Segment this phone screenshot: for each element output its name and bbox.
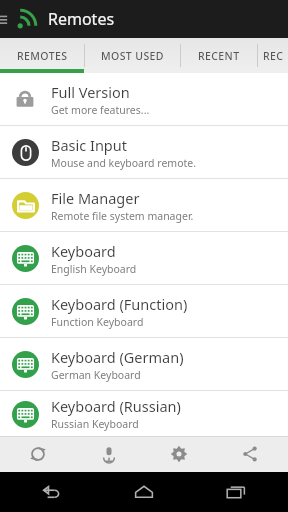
staticText: RECENT <box>198 49 240 63</box>
staticText: Mouse and keyboard remote. <box>51 156 197 170</box>
staticText: Basic Input <box>51 135 127 155</box>
button[interactable]: Keyboard (German) <box>0 338 288 391</box>
button[interactable]: Back <box>12 472 92 512</box>
staticText: Function Keyboard <box>51 315 144 329</box>
button[interactable]: REMOTES <box>0 38 84 73</box>
button[interactable]: Keyboard <box>0 232 288 285</box>
staticText: Remotes <box>48 8 115 30</box>
staticText: Get more features... <box>51 103 150 117</box>
button[interactable]: RECENT <box>181 38 257 73</box>
button[interactable]: Recents <box>196 472 276 512</box>
other: App icon <box>14 6 40 32</box>
staticText: English Keyboard <box>51 262 137 276</box>
button[interactable]: Share <box>217 436 283 472</box>
staticText: German Keyboard <box>51 368 141 382</box>
staticText: Keyboard (Function) <box>51 294 188 314</box>
button[interactable]: Keyboard (Function) <box>0 285 288 338</box>
staticText: REC <box>263 49 284 63</box>
button[interactable]: REC <box>258 38 288 73</box>
staticText: Full Version <box>51 82 130 102</box>
button[interactable]: Keyboard (Russian) <box>0 391 288 436</box>
staticText: Keyboard <box>51 241 116 261</box>
button[interactable]: Home <box>104 472 184 512</box>
staticText: REMOTES <box>17 49 68 63</box>
button[interactable]: Navigation drawer <box>0 0 11 38</box>
button[interactable]: Basic Input <box>0 126 288 179</box>
staticText: MOST USED <box>101 49 164 63</box>
staticText: Remote file system manager. <box>51 209 194 223</box>
staticText: Keyboard (German) <box>51 347 184 367</box>
button[interactable]: Full Version <box>0 73 288 126</box>
button[interactable]: Settings <box>146 436 212 472</box>
button[interactable]: Voice <box>76 436 142 472</box>
button[interactable]: Refresh <box>5 436 71 472</box>
staticText: File Manager <box>51 188 140 208</box>
staticText: Russian Keyboard <box>51 417 139 431</box>
staticText: Keyboard (Russian) <box>51 396 181 416</box>
button[interactable]: File Manager <box>0 179 288 232</box>
button[interactable]: MOST USED <box>85 38 180 73</box>
